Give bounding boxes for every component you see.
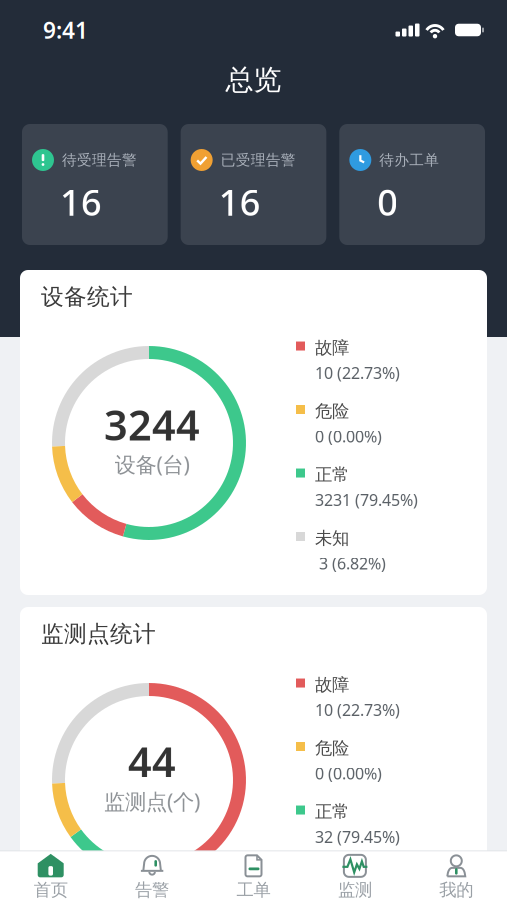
button[interactable]: 告警 bbox=[101, 853, 203, 900]
staticText: 0 bbox=[377, 178, 398, 226]
button[interactable]: 已受理告警 bbox=[181, 124, 326, 245]
staticText: 总览 bbox=[225, 63, 281, 97]
button[interactable]: 我的 bbox=[406, 853, 507, 900]
staticText: 告警 bbox=[135, 879, 169, 900]
staticText: 3 (6.82%) bbox=[315, 553, 386, 574]
staticText: 危险 bbox=[315, 737, 349, 759]
staticText: 监测点(个) bbox=[104, 787, 200, 815]
staticText: 32 (79.45%) bbox=[315, 826, 400, 847]
staticText: 危险 bbox=[315, 400, 349, 422]
staticText: 监测 bbox=[338, 879, 372, 900]
staticText: 44 bbox=[128, 734, 176, 789]
staticText: 已受理告警 bbox=[221, 151, 296, 169]
button[interactable]: 工单 bbox=[203, 853, 304, 900]
button[interactable]: 首页 bbox=[0, 853, 101, 900]
staticText: 正常 bbox=[315, 801, 349, 822]
staticText: 正常 bbox=[315, 464, 349, 485]
staticText: 监测点统计 bbox=[41, 620, 156, 648]
staticText: 工单 bbox=[236, 879, 270, 900]
staticText: 10 (22.73%) bbox=[315, 699, 400, 720]
staticText: 未知 bbox=[315, 527, 349, 549]
button[interactable]: 待办工单 bbox=[339, 124, 485, 245]
staticText: 3231 (79.45%) bbox=[315, 489, 418, 510]
staticText: 设备统计 bbox=[41, 283, 133, 311]
staticText: 3244 bbox=[104, 397, 200, 452]
staticText: 设备(台) bbox=[114, 450, 189, 478]
staticText: 待办工单 bbox=[379, 151, 439, 169]
button[interactable]: 监测 bbox=[304, 853, 406, 900]
staticText: 首页 bbox=[34, 879, 68, 900]
staticText: 0 (0.00%) bbox=[315, 426, 382, 447]
staticText: 16 bbox=[219, 178, 261, 226]
button[interactable]: 待受理告警 bbox=[22, 124, 168, 245]
staticText: 16 bbox=[60, 178, 102, 226]
staticText: 故障 bbox=[315, 337, 349, 358]
staticText: 待受理告警 bbox=[62, 151, 137, 169]
staticText: 故障 bbox=[315, 674, 349, 695]
staticText: 0 (0.00%) bbox=[315, 763, 382, 784]
staticText: 10 (22.73%) bbox=[315, 362, 400, 383]
staticText: 9:41 bbox=[43, 15, 88, 45]
staticText: 我的 bbox=[439, 879, 473, 900]
